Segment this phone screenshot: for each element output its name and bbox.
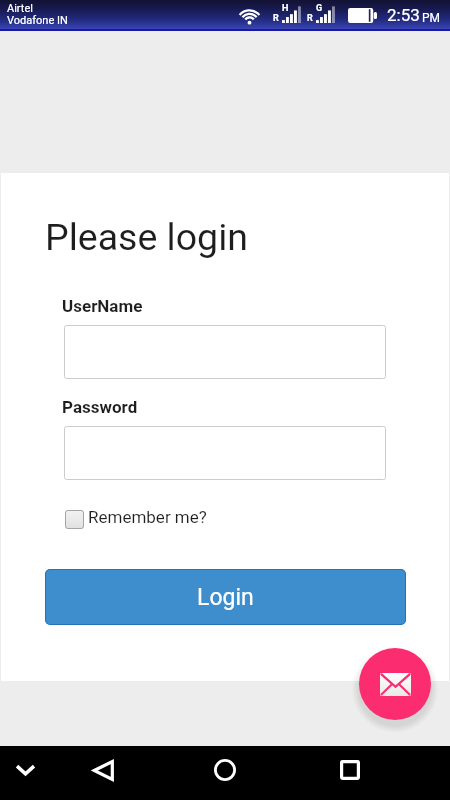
staticText: UserName bbox=[62, 296, 143, 316]
staticText: H bbox=[282, 3, 289, 14]
button[interactable]: Remember me? bbox=[65, 507, 207, 527]
staticText: Remember me? bbox=[88, 507, 207, 527]
button[interactable] bbox=[64, 426, 386, 480]
button[interactable]: Compose message bbox=[359, 648, 431, 720]
button[interactable]: Login bbox=[45, 569, 406, 625]
staticText: 2:53 bbox=[387, 5, 420, 25]
button[interactable]: Home bbox=[201, 746, 249, 794]
staticText: Password bbox=[62, 397, 138, 417]
staticText: R bbox=[307, 13, 313, 24]
staticText: Airtel bbox=[7, 2, 33, 15]
staticText: G bbox=[316, 3, 323, 14]
staticText: Login bbox=[197, 584, 254, 611]
button[interactable]: Back bbox=[79, 746, 127, 794]
staticText: Vodafone IN bbox=[7, 14, 68, 27]
staticText: PM bbox=[422, 11, 441, 25]
staticText: Please login bbox=[45, 215, 248, 259]
button[interactable] bbox=[64, 325, 386, 379]
button[interactable]: Recents bbox=[326, 746, 374, 794]
button[interactable]: Hide keyboard bbox=[1, 746, 49, 794]
staticText: R bbox=[273, 13, 279, 24]
